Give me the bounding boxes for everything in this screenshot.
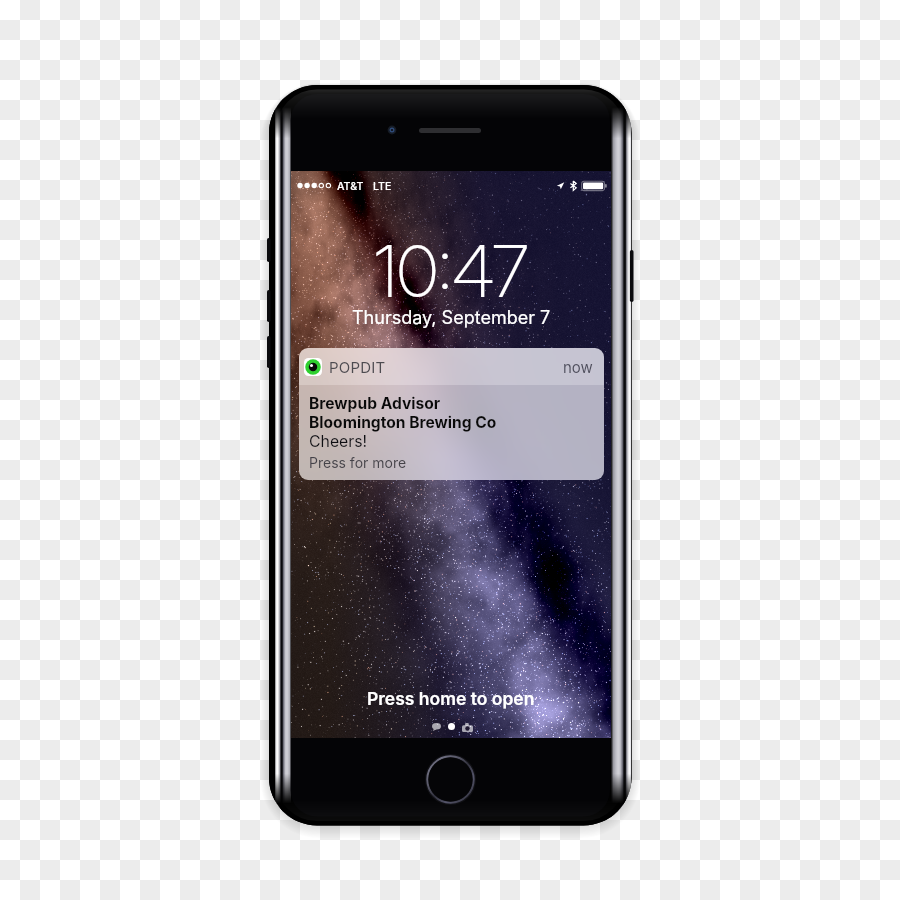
- staticText: Cheers!: [309, 432, 368, 451]
- staticText: Thursday, September 7: [352, 307, 551, 329]
- staticText: now: [563, 358, 593, 376]
- button[interactable]: Widgets: [429, 720, 443, 734]
- staticText: POPDIT: [329, 358, 386, 376]
- staticText: AT&T: [337, 180, 364, 193]
- staticText: LTE: [373, 180, 392, 193]
- button[interactable]: POPDIT: [299, 348, 604, 480]
- staticText: Brewpub Advisor: [309, 394, 441, 413]
- staticText: Bloomington Brewing Co: [309, 413, 497, 432]
- staticText: Press home to open: [367, 688, 535, 709]
- button[interactable]: Camera: [460, 720, 474, 734]
- staticText: Press for more: [309, 454, 407, 471]
- staticText: 10:47: [374, 228, 529, 314]
